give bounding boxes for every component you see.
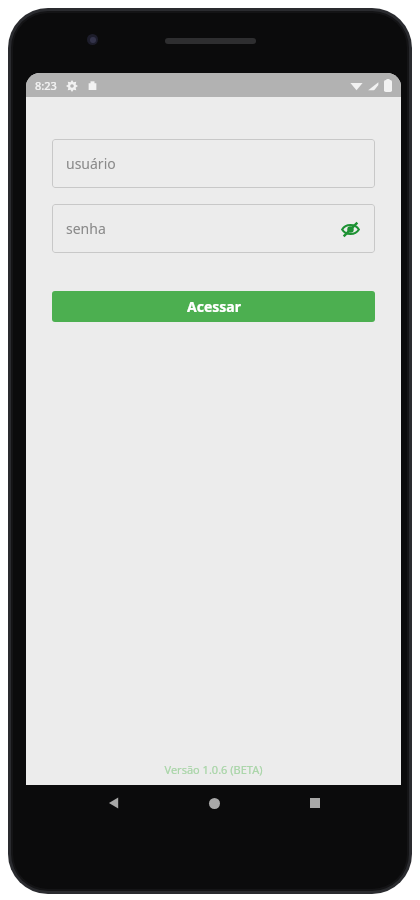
- staticText: Acessar: [187, 297, 241, 316]
- staticText: senha: [66, 219, 106, 238]
- button[interactable]: Recent apps: [299, 787, 331, 819]
- button[interactable]: Back: [98, 787, 130, 819]
- button[interactable]: Home: [198, 787, 230, 819]
- staticText: usuário: [66, 154, 116, 173]
- button[interactable]: Acessar: [52, 291, 375, 322]
- button[interactable]: Mostrar senha: [335, 214, 365, 244]
- button[interactable]: senha: [52, 204, 375, 253]
- button[interactable]: usuário: [52, 139, 375, 188]
- staticText: Versão 1.0.6 (BETA): [26, 762, 401, 777]
- staticText: 8:23: [35, 78, 57, 93]
